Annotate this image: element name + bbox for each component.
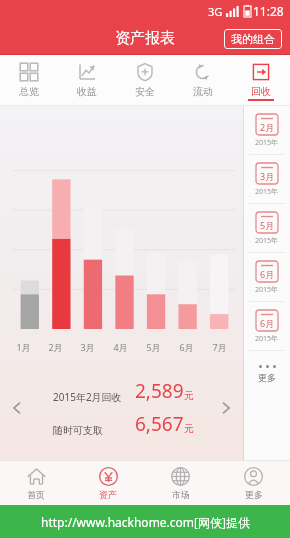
staticText: 市场 bbox=[172, 489, 190, 500]
staticText: 6,567 bbox=[135, 411, 184, 437]
button[interactable]: 市场 bbox=[144, 460, 217, 505]
button[interactable]: 6月 bbox=[244, 302, 290, 350]
staticText: 2015年 bbox=[255, 334, 279, 344]
staticText: 随时可支取 bbox=[53, 424, 103, 437]
staticText: 2015年 bbox=[255, 285, 279, 295]
staticText: 总览 bbox=[19, 85, 39, 98]
button[interactable]: 我的组合 bbox=[224, 29, 282, 49]
staticText: 回收 bbox=[251, 85, 271, 98]
button[interactable]: 安全 bbox=[116, 55, 174, 105]
staticText: 5月 bbox=[146, 341, 161, 353]
staticText: 2月 bbox=[48, 341, 63, 353]
staticText: 元 bbox=[184, 389, 194, 402]
button[interactable]: 下一月 bbox=[213, 395, 239, 421]
button[interactable]: 流动 bbox=[174, 55, 232, 105]
staticText: 3月 bbox=[260, 170, 275, 182]
button[interactable]: 总览 bbox=[0, 55, 58, 105]
button[interactable]: 2月 bbox=[244, 106, 290, 154]
staticText: 更多 bbox=[258, 372, 276, 383]
button[interactable]: 5月 bbox=[244, 204, 290, 252]
button[interactable]: 回收 bbox=[232, 55, 290, 105]
staticText: 我的组合 bbox=[231, 32, 275, 46]
staticText: 流动 bbox=[193, 85, 213, 98]
staticText: 7月 bbox=[212, 341, 227, 353]
staticText: 2015年 bbox=[255, 236, 279, 246]
button[interactable]: 更多 bbox=[244, 351, 290, 397]
staticText: 2015年 bbox=[255, 138, 279, 148]
staticText: http://www.hackhome.com[网侠]提供 bbox=[41, 514, 250, 530]
button[interactable]: 首页 bbox=[0, 460, 72, 505]
staticText: 2015年 bbox=[255, 187, 279, 197]
staticText: 5月 bbox=[260, 219, 275, 231]
staticText: 收益 bbox=[77, 85, 97, 98]
button[interactable]: 上一月 bbox=[4, 395, 30, 421]
button[interactable]: 3月 bbox=[244, 155, 290, 203]
staticText: 6月 bbox=[260, 317, 275, 329]
button[interactable]: 更多 bbox=[217, 460, 290, 505]
staticText: 6月 bbox=[179, 341, 194, 353]
staticText: 更多 bbox=[245, 489, 263, 500]
button[interactable]: 收益 bbox=[58, 55, 116, 105]
staticText: 3月 bbox=[80, 341, 95, 353]
staticText: 2,589 bbox=[135, 378, 184, 404]
staticText: 4月 bbox=[113, 341, 128, 353]
staticText: 11:28 bbox=[253, 3, 284, 19]
staticText: 首页 bbox=[27, 489, 45, 500]
staticText: 2015年2月回收 bbox=[53, 390, 122, 404]
staticText: 安全 bbox=[135, 85, 155, 98]
staticText: 元 bbox=[184, 422, 194, 435]
staticText: 3G bbox=[208, 4, 223, 19]
staticText: 资产报表 bbox=[115, 29, 175, 48]
staticText: 1月 bbox=[16, 341, 31, 353]
button[interactable]: 资产 bbox=[72, 460, 144, 505]
staticText: 2月 bbox=[260, 121, 275, 133]
button[interactable]: 6月 bbox=[244, 253, 290, 301]
staticText: 6月 bbox=[260, 268, 275, 280]
staticText: 资产 bbox=[99, 489, 117, 500]
